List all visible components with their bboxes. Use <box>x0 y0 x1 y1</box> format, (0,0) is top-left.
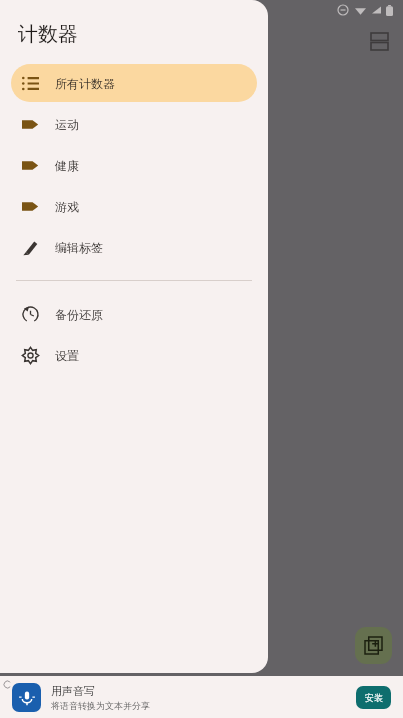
button[interactable]: Add counter <box>355 627 392 664</box>
button[interactable]: 所有计数器 <box>11 64 257 102</box>
button[interactable]: 备份还原 <box>11 295 257 333</box>
staticText: 运动 <box>55 117 79 132</box>
staticText: 设置 <box>55 348 79 363</box>
staticText: 备份还原 <box>55 307 103 322</box>
button[interactable]: 运动 <box>11 105 257 143</box>
staticText: 安装 <box>365 692 383 703</box>
staticText: 用声音写 <box>51 684 95 698</box>
button[interactable]: 健康 <box>11 146 257 184</box>
button[interactable]: 安装 <box>356 686 391 709</box>
staticText: 将语音转换为文本并分享 <box>51 700 150 711</box>
staticText: 所有计数器 <box>55 76 115 91</box>
staticText: 计数器 <box>18 22 78 47</box>
staticText: 健康 <box>55 158 79 173</box>
button[interactable]: 编辑标签 <box>11 228 257 266</box>
staticText: 编辑标签 <box>55 240 103 255</box>
button[interactable]: 游戏 <box>11 187 257 225</box>
staticText: 游戏 <box>55 199 79 214</box>
button[interactable]: 设置 <box>11 336 257 374</box>
button[interactable]: View mode <box>363 25 395 57</box>
